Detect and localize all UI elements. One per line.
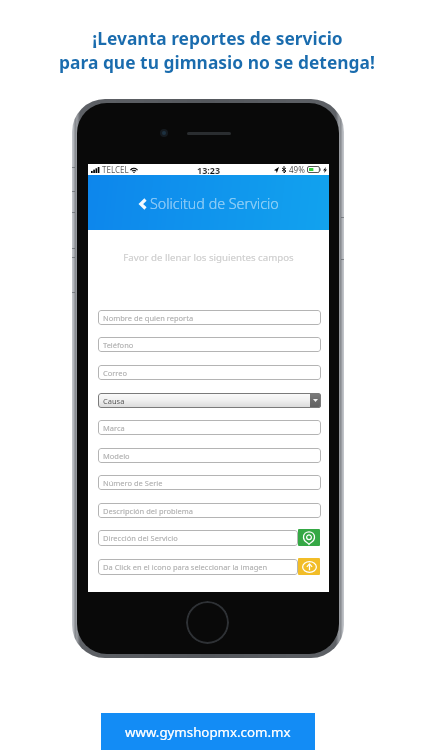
- button[interactable]: Dirección del Servicio: [298, 529, 320, 546]
- button[interactable]: Da Click en el icono para seleccionar la…: [98, 559, 298, 575]
- staticText: Teléfono: [103, 340, 134, 350]
- button[interactable]: Descripción del problema: [98, 503, 321, 518]
- staticText: TELCEL: [102, 164, 129, 175]
- button[interactable]: Da Click en el icono para seleccionar la…: [298, 558, 320, 575]
- staticText: Número de Serie: [103, 478, 163, 488]
- staticText: www.gymshopmx.com.mx: [125, 723, 291, 741]
- staticText: 13:23: [197, 164, 221, 175]
- button[interactable]: Nombre de quien reporta: [98, 310, 321, 325]
- staticText: ¡Levanta reportes de servicio: [92, 26, 343, 50]
- staticText: Favor de llenar los siguientes campos: [88, 251, 329, 264]
- staticText: Marca: [103, 423, 125, 433]
- button[interactable]: Número de Serie: [98, 475, 321, 490]
- staticText: Solicitud de Servicio: [150, 194, 279, 213]
- staticText: para que tu gimnasio no se detenga!: [59, 50, 375, 74]
- staticText: Modelo: [103, 451, 130, 461]
- button[interactable]: Modelo: [98, 448, 321, 463]
- button[interactable]: Causa: [98, 393, 321, 408]
- staticText: Dirección del Servicio: [103, 533, 178, 543]
- staticText: Causa: [103, 396, 125, 406]
- staticText: Da Click en el icono para seleccionar la…: [103, 562, 268, 572]
- staticText: Descripción del problema: [103, 506, 194, 516]
- staticText: Correo: [103, 368, 128, 378]
- button[interactable]: Marca: [98, 420, 321, 435]
- button[interactable]: Solicitud de Servicio: [139, 194, 279, 213]
- button[interactable]: Correo: [98, 365, 321, 380]
- button[interactable]: Dirección del Servicio: [98, 530, 298, 546]
- staticText: Nombre de quien reporta: [103, 313, 194, 323]
- button[interactable]: Teléfono: [98, 337, 321, 352]
- staticText: 49%: [289, 164, 305, 175]
- button[interactable]: www.gymshopmx.com.mx: [101, 713, 315, 750]
